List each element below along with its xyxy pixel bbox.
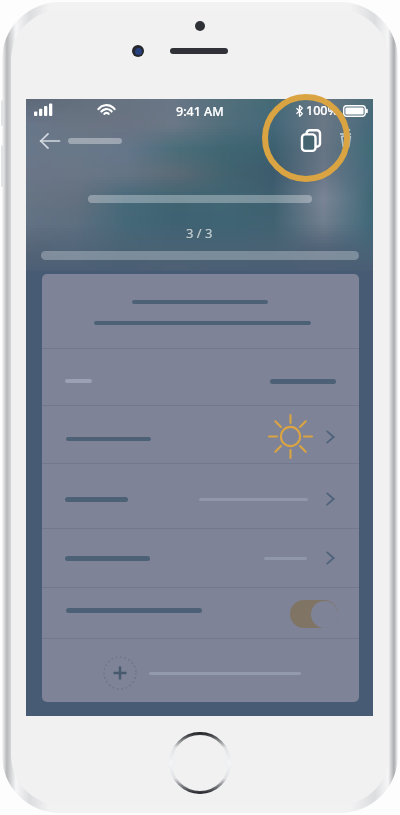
button[interactable] [42,405,359,463]
button[interactable] [42,528,359,587]
staticText: 9:41 AM [176,103,224,120]
button[interactable] [42,274,359,348]
staticText: 100% [306,102,339,119]
button[interactable] [42,463,359,528]
staticText: 3 / 3 [186,224,213,242]
button[interactable]: Delete [339,127,355,149]
button[interactable] [42,348,359,405]
button[interactable]: Back [39,130,61,152]
button[interactable]: Toggle setting [290,600,338,628]
button[interactable] [42,638,359,702]
button[interactable]: Duplicate [301,129,321,152]
